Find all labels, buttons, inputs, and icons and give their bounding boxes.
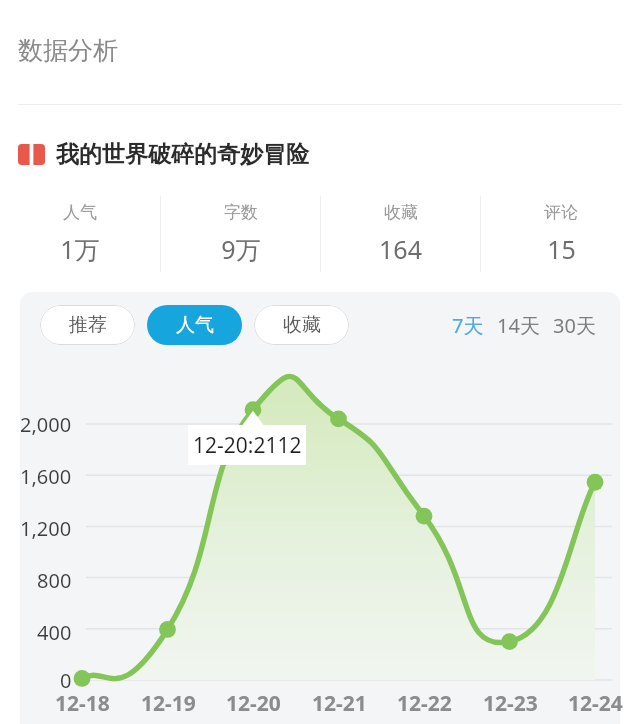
button[interactable]: 7天 <box>452 312 484 339</box>
staticText: 800 <box>37 567 72 594</box>
staticText: 12-18 <box>55 689 110 718</box>
staticText: 我的世界破碎的奇妙冒险 <box>56 140 309 169</box>
button[interactable]: 30天 <box>553 312 596 339</box>
button[interactable]: 14天 <box>497 312 540 339</box>
staticText: 字数 <box>224 202 258 223</box>
staticText: 30天 <box>553 312 596 339</box>
staticText: 数据分析 <box>18 35 118 66</box>
staticText: 人气 <box>176 313 214 337</box>
other: Book <box>18 144 45 165</box>
staticText: 14天 <box>497 312 540 339</box>
staticText: 164 <box>379 232 422 266</box>
staticText: 1,600 <box>20 463 72 490</box>
button[interactable]: 收藏 <box>254 305 349 345</box>
button[interactable]: 评论 <box>481 190 640 278</box>
staticText: 1,200 <box>20 515 72 542</box>
staticText: 收藏 <box>283 313 321 337</box>
staticText: 9万 <box>221 232 261 266</box>
staticText: 推荐 <box>69 313 107 337</box>
staticText: 0 <box>60 667 72 694</box>
button[interactable]: Book <box>0 132 640 176</box>
staticText: 1万 <box>60 232 100 266</box>
staticText: 15 <box>547 232 576 266</box>
button[interactable]: 字数 <box>161 190 320 278</box>
staticText: 12-21 <box>312 689 367 718</box>
staticText: 12-24 <box>568 689 623 718</box>
staticText: 12-20 <box>226 689 281 718</box>
staticText: 评论 <box>544 202 578 223</box>
staticText: 收藏 <box>384 202 418 223</box>
staticText: 2,000 <box>20 411 72 438</box>
staticText: 7天 <box>452 312 484 339</box>
staticText: 12-22 <box>397 689 452 718</box>
button[interactable]: 收藏 <box>321 190 480 278</box>
button[interactable]: 人气 <box>147 305 242 345</box>
staticText: 12-19 <box>141 689 196 718</box>
staticText: 12-20:2112 <box>193 431 302 460</box>
staticText: 人气 <box>63 202 97 223</box>
button[interactable]: 人气 <box>0 190 160 278</box>
staticText: 12-23 <box>483 689 538 718</box>
button[interactable]: 推荐 <box>40 305 135 345</box>
staticText: 400 <box>37 619 72 646</box>
